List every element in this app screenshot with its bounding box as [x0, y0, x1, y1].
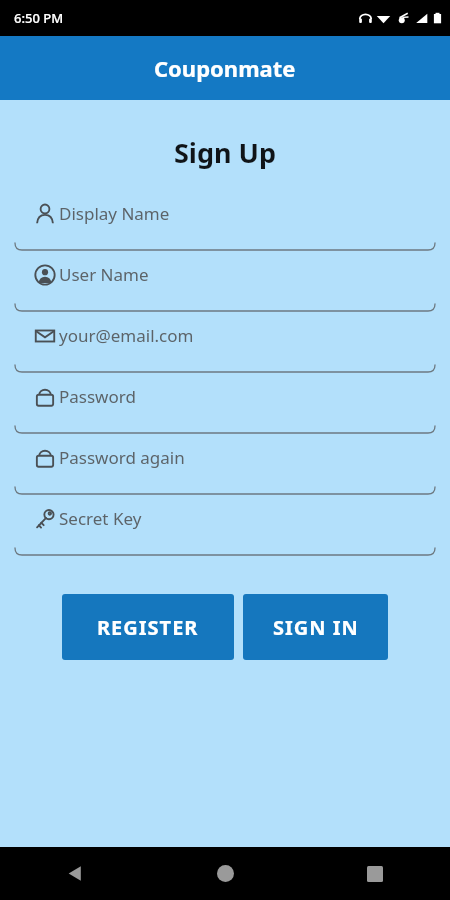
button[interactable]: Password again — [0, 437, 450, 498]
staticText: Secret Key — [59, 507, 142, 530]
staticText: Display Name — [59, 202, 170, 225]
button[interactable]: User Name — [0, 254, 450, 315]
button[interactable]: REGISTER — [62, 594, 234, 660]
button[interactable]: Secret Key — [0, 498, 450, 559]
staticText: your@email.com — [59, 324, 194, 347]
button[interactable]: Home — [150, 847, 300, 900]
button[interactable]: Display Name — [0, 193, 450, 254]
staticText: SIGN IN — [273, 614, 359, 641]
staticText: REGISTER — [97, 614, 199, 641]
staticText: Password again — [59, 446, 185, 469]
staticText: Couponmate — [154, 53, 296, 83]
staticText: Password — [59, 385, 136, 408]
staticText: User Name — [59, 263, 149, 286]
button[interactable]: Recent apps — [300, 847, 450, 900]
button[interactable]: your@email.com — [0, 315, 450, 376]
staticText: 6:50 PM — [14, 9, 64, 27]
staticText: Sign Up — [0, 134, 450, 171]
button[interactable]: SIGN IN — [243, 594, 388, 660]
button[interactable]: Back — [0, 847, 150, 900]
button[interactable]: Password — [0, 376, 450, 437]
